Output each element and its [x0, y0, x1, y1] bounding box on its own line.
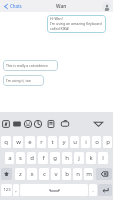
button[interactable]: g: [50, 152, 60, 164]
staticText: l: [102, 154, 104, 162]
button[interactable]: j: [74, 152, 84, 164]
button[interactable]: Hi Wan! I'm using an amazing Keyboard ca…: [47, 15, 106, 33]
staticText: h: [65, 154, 69, 162]
button[interactable]: Enter: [98, 184, 112, 196]
button[interactable]: Shift: [1, 168, 12, 180]
button[interactable]: d: [27, 152, 36, 164]
staticText: b: [65, 170, 69, 178]
button[interactable]: e: [25, 136, 35, 148]
staticText: 123: [3, 187, 11, 193]
button[interactable]: Sticker: [45, 112, 56, 136]
staticText: Chats: [10, 3, 22, 9]
button[interactable]: s: [16, 152, 25, 164]
button[interactable]: This is really a coincidence: [3, 60, 58, 71]
button[interactable]: Clipboard: [59, 112, 70, 136]
button[interactable]: k: [86, 152, 96, 164]
staticText: p: [106, 138, 110, 146]
staticText: I'm using it, too: [6, 78, 31, 83]
staticText: Wan: [56, 3, 67, 10]
staticText: d: [30, 154, 34, 162]
button[interactable]: m: [84, 168, 93, 180]
button[interactable]: x: [27, 168, 37, 180]
staticText: .: [92, 186, 94, 194]
button[interactable]: n: [73, 168, 82, 180]
staticText: ,: [15, 186, 17, 194]
button[interactable]: r: [37, 136, 46, 148]
staticText: v: [54, 170, 58, 178]
staticText: f: [42, 154, 45, 162]
staticText: n: [76, 170, 80, 178]
button[interactable]: I'm using it, too: [3, 75, 44, 86]
button[interactable]: ,: [13, 184, 19, 196]
button[interactable]: Space: [20, 184, 88, 196]
button[interactable]: u: [70, 136, 79, 148]
staticText: i: [85, 138, 87, 146]
staticText: u: [73, 138, 77, 146]
button[interactable]: Emoji: [22, 112, 33, 136]
staticText: w: [16, 138, 21, 146]
staticText: o: [95, 138, 99, 146]
button[interactable]: q: [1, 136, 11, 148]
button[interactable]: y: [59, 136, 68, 148]
button[interactable]: Hide keyboard: [92, 112, 104, 136]
staticText: x: [30, 170, 34, 178]
button[interactable]: Profile: [102, 2, 111, 11]
button[interactable]: o: [92, 136, 101, 148]
staticText: y: [62, 138, 66, 146]
button[interactable]: f: [38, 152, 48, 164]
staticText: s: [19, 154, 22, 162]
button[interactable]: Theme: [0, 112, 11, 136]
staticText: This is really a coincidence: [6, 63, 48, 68]
staticText: z: [19, 170, 22, 178]
staticText: e: [28, 138, 32, 146]
button[interactable]: Chats: [2, 3, 22, 9]
button[interactable]: Voice: [32, 112, 43, 136]
staticText: q: [4, 138, 8, 146]
button[interactable]: c: [39, 168, 49, 180]
staticText: a: [8, 154, 12, 162]
button[interactable]: .: [89, 184, 97, 196]
staticText: Hi Wan! I'm using an amazing Keyboard ca…: [50, 16, 102, 31]
staticText: m: [86, 170, 92, 178]
button[interactable]: l: [98, 152, 108, 164]
button[interactable]: b: [62, 168, 71, 180]
button[interactable]: v: [51, 168, 60, 180]
button[interactable]: p: [103, 136, 112, 148]
staticText: c: [43, 170, 46, 178]
button[interactable]: t: [48, 136, 57, 148]
staticText: t: [51, 138, 54, 146]
button[interactable]: Gif: [11, 112, 22, 136]
button[interactable]: a: [5, 152, 14, 164]
button[interactable]: Backspace: [96, 168, 112, 180]
staticText: j: [78, 154, 80, 162]
button[interactable]: 123: [1, 184, 12, 196]
button[interactable]: w: [13, 136, 23, 148]
staticText: r: [40, 138, 43, 146]
staticText: g: [53, 154, 57, 162]
button[interactable]: h: [62, 152, 72, 164]
button[interactable]: i: [81, 136, 90, 148]
button[interactable]: z: [15, 168, 25, 180]
staticText: k: [89, 154, 93, 162]
